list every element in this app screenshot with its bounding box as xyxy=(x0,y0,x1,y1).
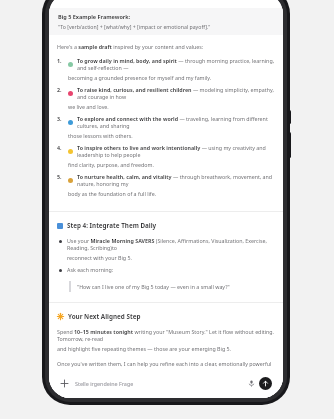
staticText: To explore and connect with the world — … xyxy=(77,115,275,129)
button[interactable]: Add attachment xyxy=(54,373,278,393)
staticText: find clarity, purpose, and freedom. xyxy=(68,161,154,168)
staticText: To raise kind, curious, and resilient ch… xyxy=(77,86,275,100)
staticText: To nurture health, calm, and vitality — … xyxy=(77,173,275,187)
staticText: "How can I live one of my Big 5 today — … xyxy=(77,283,230,290)
button[interactable]: Voice input xyxy=(246,378,256,388)
button[interactable]: Send xyxy=(259,377,272,390)
staticText: becoming a grounded presence for myself … xyxy=(68,74,212,81)
staticText: can use for affirmations, decision-makin… xyxy=(57,377,242,384)
staticText: body as the foundation of a full life. xyxy=(68,190,157,197)
staticText: 5. xyxy=(57,173,62,180)
staticText: Use your Miracle Morning SAVERS (Silence… xyxy=(67,237,275,251)
staticText: Your Next Aligned Step xyxy=(68,312,141,321)
staticText: To grow daily in mind, body, and spirit … xyxy=(77,57,275,71)
staticText: Stelle irgendeine Frage xyxy=(75,380,134,387)
staticText: 4. xyxy=(57,144,62,151)
staticText: Step 4: Integrate Them Daily xyxy=(67,221,157,230)
staticText: Here's a sample draft inspired by your c… xyxy=(57,43,204,50)
staticText: 1. xyxy=(57,57,62,64)
staticText: 2. xyxy=(57,86,62,93)
staticText: and highlight five repeating themes — th… xyxy=(57,345,231,352)
staticText: Big 5 Example Framework: xyxy=(58,13,131,20)
staticText: those lessons with others. xyxy=(68,132,133,139)
staticText: Spend 10–15 minutes tonight writing your… xyxy=(57,328,275,342)
button[interactable]: Add attachment xyxy=(60,379,69,388)
staticText: "To [verb/action] + [what/why] + [impact… xyxy=(58,23,211,30)
staticText: reconnect with your Big 5. xyxy=(67,254,132,261)
staticText: Once you've written them, I can help you… xyxy=(57,360,275,374)
staticText: Ask each morning: xyxy=(67,266,114,273)
staticText: we live and love. xyxy=(68,103,109,110)
staticText: 3. xyxy=(57,115,62,122)
staticText: To inspire others to live and work inten… xyxy=(77,144,275,158)
